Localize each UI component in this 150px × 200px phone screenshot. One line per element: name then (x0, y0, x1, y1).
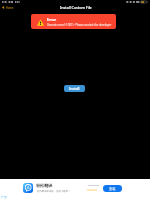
staticText: Install Custom File (60, 5, 92, 10)
staticText: Home (6, 6, 14, 10)
staticText: 广告 (1, 195, 7, 199)
button[interactable]: Home (2, 5, 16, 10)
button[interactable]: 轻松翻译 (0, 179, 150, 200)
staticText: 软件翻译新体验，快来下载吧！ (37, 190, 71, 193)
staticText: Generic error (-1001) - Please contact t… (47, 23, 112, 27)
staticText: 轻松翻译 (36, 183, 53, 188)
staticText: App Store (88, 183, 99, 186)
button[interactable]: Error (31, 14, 116, 29)
button[interactable]: Install (64, 85, 85, 92)
staticText: Error (47, 17, 57, 22)
staticText: 安装 (109, 187, 116, 191)
staticText: Install (69, 86, 80, 91)
button[interactable]: 安装 (103, 185, 122, 192)
